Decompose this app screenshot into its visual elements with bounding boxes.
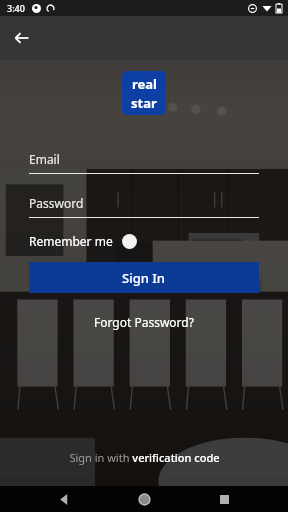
button[interactable]: Back <box>48 486 80 512</box>
staticText: star <box>131 94 157 112</box>
staticText: Forgot Password? <box>94 314 194 330</box>
staticText: Remember me <box>29 233 113 249</box>
staticText: 3:40 <box>7 2 25 14</box>
button[interactable]: Sign In <box>29 262 259 293</box>
staticText: Password <box>29 195 84 211</box>
button[interactable]: Home <box>128 486 160 512</box>
button[interactable]: Sign in with verification code <box>0 444 288 470</box>
button[interactable]: Remember me <box>29 233 137 249</box>
button[interactable]: Back <box>6 22 38 54</box>
staticText: Sign In <box>122 269 166 287</box>
staticText: real <box>132 75 157 93</box>
button[interactable]: Recent apps <box>208 486 240 512</box>
staticText: Sign in with verification code <box>69 450 220 465</box>
staticText: Email <box>29 151 60 167</box>
button[interactable]: Forgot Password? <box>0 310 288 334</box>
